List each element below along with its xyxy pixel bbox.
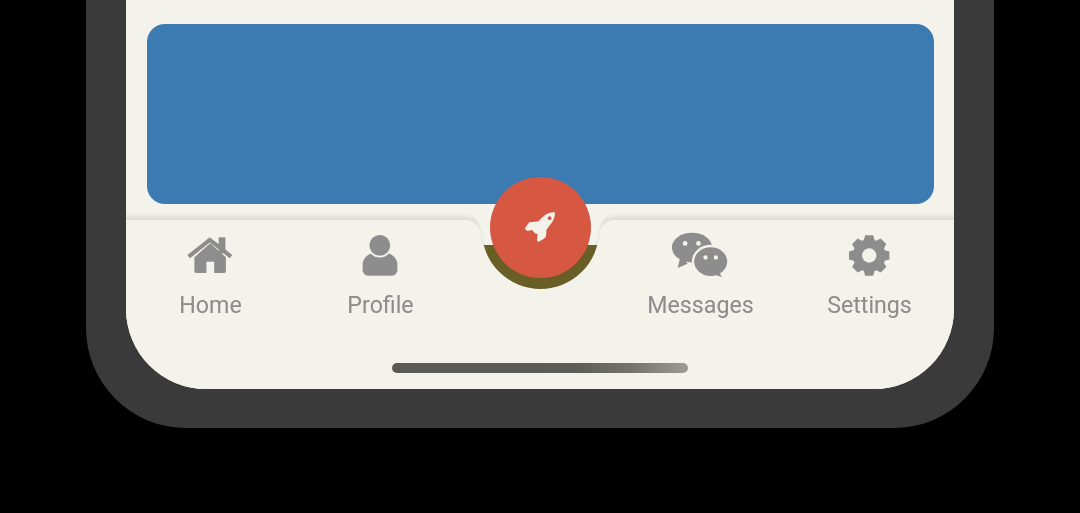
button[interactable]: Settings <box>785 220 953 320</box>
button[interactable]: Launch <box>490 177 591 278</box>
button[interactable]: Profile <box>296 220 464 320</box>
staticText: Settings <box>827 291 912 318</box>
staticText: Profile <box>347 291 414 318</box>
staticText: Home <box>179 291 242 318</box>
button[interactable] <box>147 24 934 204</box>
button[interactable]: Home <box>126 220 294 320</box>
button[interactable]: Messages <box>616 220 784 320</box>
staticText: Messages <box>647 291 754 318</box>
